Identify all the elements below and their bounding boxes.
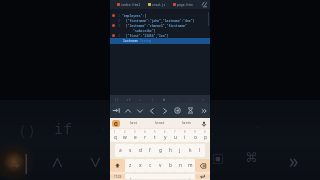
button[interactable] — [195, 159, 210, 172]
button[interactable]: k — [185, 144, 195, 157]
staticText: String — [140, 39, 152, 43]
button[interactable]: Move right — [158, 103, 171, 118]
staticText: u — [174, 134, 177, 141]
button[interactable]: 6 — [160, 129, 170, 142]
button[interactable]: a — [115, 144, 125, 157]
staticText: i — [184, 134, 186, 141]
staticText: t — [154, 134, 156, 141]
staticText: o — [194, 134, 197, 141]
button[interactable]: d — [135, 144, 145, 157]
staticText: a — [119, 147, 122, 154]
button[interactable] — [110, 159, 125, 172]
button[interactable]: More keys — [197, 103, 210, 118]
button[interactable]: m — [185, 159, 195, 172]
button[interactable]: , — [125, 174, 136, 179]
staticText: l — [199, 147, 201, 154]
button[interactable]: lasts — [173, 118, 200, 128]
staticText: {"lastname":"channel","firstname" — [122, 24, 187, 28]
button[interactable]: 9 — [190, 129, 200, 142]
button[interactable]: 1 — [110, 129, 120, 142]
button[interactable]: c — [145, 159, 155, 172]
staticText: ▣ — [208, 147, 228, 169]
staticText: b — [169, 162, 172, 169]
staticText: 9 — [194, 130, 196, 134]
button[interactable]: h — [165, 144, 175, 157]
staticText: lasts — [182, 120, 191, 126]
staticText: g — [159, 147, 162, 154]
button[interactable]: Insert ■ — [158, 95, 171, 103]
staticText: ⌘ — [246, 147, 257, 168]
staticText: x — [139, 162, 142, 169]
button[interactable]: page.htm — [173, 0, 193, 9]
staticText: 7 — [174, 130, 176, 134]
button[interactable] — [195, 174, 210, 179]
button[interactable]: g — [155, 144, 165, 157]
button[interactable]: l — [195, 144, 205, 157]
button[interactable]: 8 — [180, 129, 190, 142]
button[interactable]: Indent — [110, 103, 122, 118]
staticText: 4 — [118, 34, 120, 38]
staticText: + — [139, 97, 142, 102]
staticText: "subscribe"} — [122, 29, 156, 33]
button[interactable]: z — [125, 159, 135, 172]
button[interactable]: 3 — [130, 129, 140, 142]
staticText: 2 — [124, 130, 126, 134]
staticText: 3 — [118, 24, 120, 28]
staticText: ■ — [163, 97, 166, 102]
staticText: 5 — [154, 130, 156, 134]
button[interactable]: 2 — [120, 129, 130, 142]
button[interactable]: Select — [171, 103, 184, 118]
staticText: {"firstname":"john","lastname":"doe"} — [122, 19, 195, 23]
staticText: k — [189, 147, 192, 154]
staticText: f — [149, 147, 151, 154]
staticText: if — [54, 118, 73, 138]
button[interactable]: index.html — [117, 0, 141, 9]
button[interactable]: j — [175, 144, 185, 157]
button[interactable]: Move down — [134, 103, 146, 118]
staticText: n — [179, 162, 182, 169]
staticText: "employees":[ — [122, 14, 147, 18]
button[interactable]: Insert | — [146, 95, 158, 103]
button[interactable]: Insert + — [134, 95, 146, 103]
button[interactable]: f — [145, 144, 155, 157]
button[interactable]: 7 — [170, 129, 180, 142]
button[interactable]: Insert {} — [110, 95, 122, 103]
button[interactable]: 5 — [150, 129, 160, 142]
button[interactable]: Google search — [112, 120, 120, 127]
button[interactable]: Voice input — [200, 120, 207, 127]
button[interactable]: b — [165, 159, 175, 172]
button[interactable]: x — [135, 159, 145, 172]
staticText: w — [123, 134, 127, 141]
staticText: least — [155, 120, 165, 126]
staticText: 2 — [118, 19, 120, 23]
button[interactable]: Collapse — [184, 103, 197, 118]
staticText: ∨ — [90, 150, 101, 175]
button[interactable]: Insert « — [197, 95, 210, 103]
button[interactable]: read.js — [148, 0, 166, 9]
staticText: « — [202, 97, 205, 102]
button[interactable]: 0 — [200, 129, 210, 142]
button[interactable]: . — [184, 174, 195, 179]
button[interactable]: Open tabs — [201, 1, 208, 8]
button[interactable]: Move left — [146, 103, 158, 118]
button[interactable]: least — [146, 118, 173, 128]
staticText: 1 — [118, 14, 120, 18]
button[interactable]: s — [125, 144, 135, 157]
button[interactable]: v — [155, 159, 165, 172]
staticText: : — [176, 97, 179, 102]
staticText: ?123 — [114, 174, 122, 179]
staticText: 6 — [164, 130, 166, 134]
button[interactable]: last — [120, 118, 146, 128]
staticText: read.js — [152, 3, 166, 7]
staticText: ∧ — [52, 150, 63, 175]
button[interactable]: 4 — [140, 129, 150, 142]
button[interactable]: ?123 — [110, 174, 125, 179]
button[interactable]: n — [175, 159, 185, 172]
button[interactable]: Insert if — [122, 95, 134, 103]
button[interactable]: Move up — [122, 103, 134, 118]
staticText: h — [169, 147, 172, 154]
